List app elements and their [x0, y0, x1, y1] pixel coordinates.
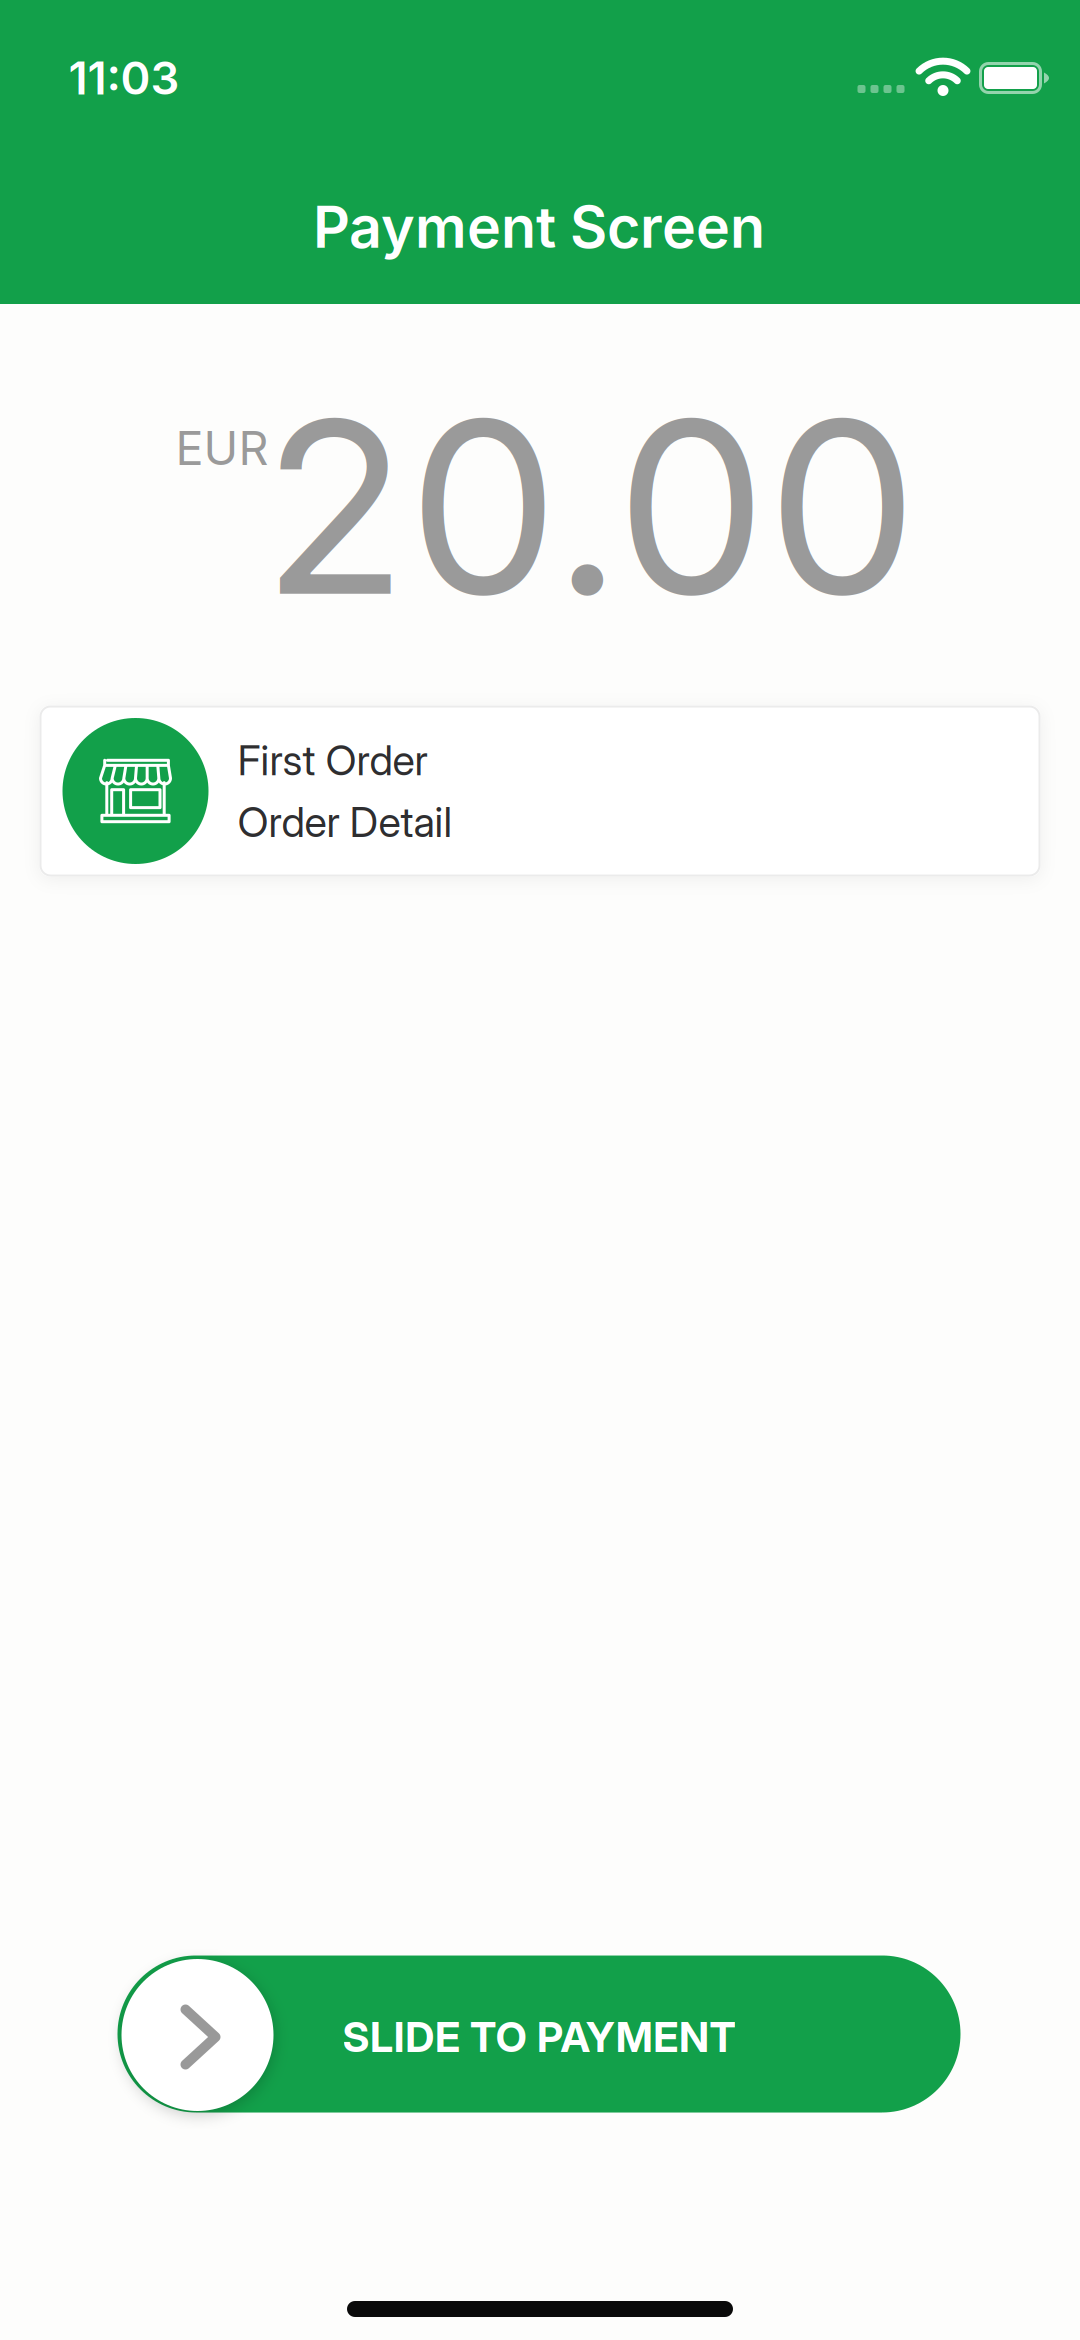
staticText: SLIDE TO PAYMENT — [342, 2013, 735, 2061]
staticText: Order Detail — [237, 797, 452, 846]
button[interactable]: First Order — [39, 705, 1040, 876]
staticText: 11:03 — [68, 51, 179, 105]
button[interactable]: SLIDE TO PAYMENT — [117, 1955, 960, 2112]
staticText: First Order — [237, 736, 427, 784]
staticText: 20.00 — [262, 366, 918, 648]
staticText: Payment Screen — [313, 193, 765, 261]
staticText: EUR — [175, 420, 268, 476]
